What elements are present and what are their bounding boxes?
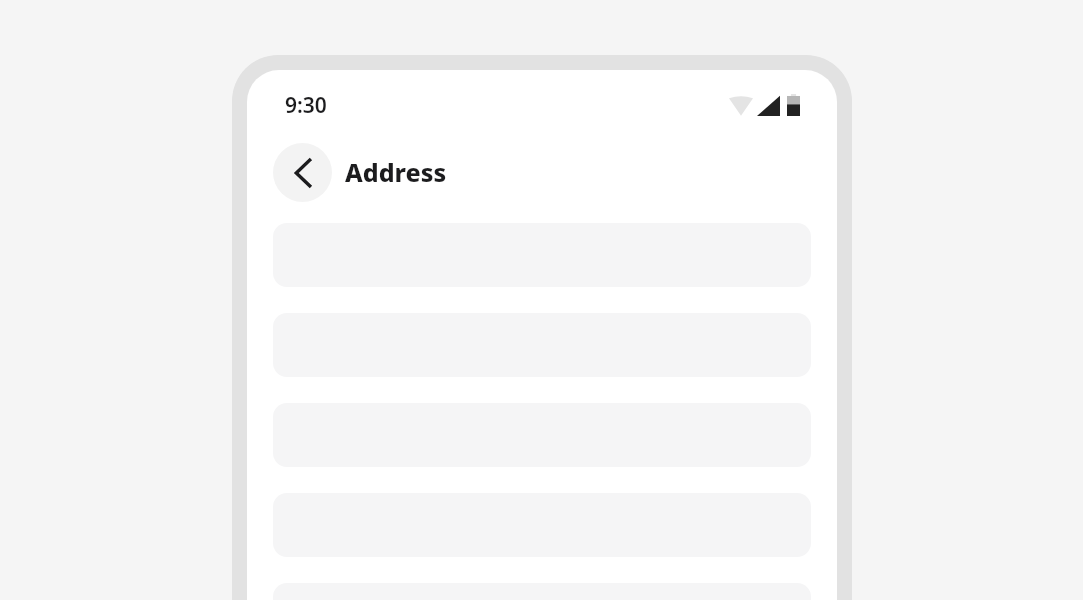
staticText: 9:30 [285, 91, 327, 120]
staticText: Address [345, 155, 447, 189]
button[interactable]: Back [273, 143, 332, 202]
